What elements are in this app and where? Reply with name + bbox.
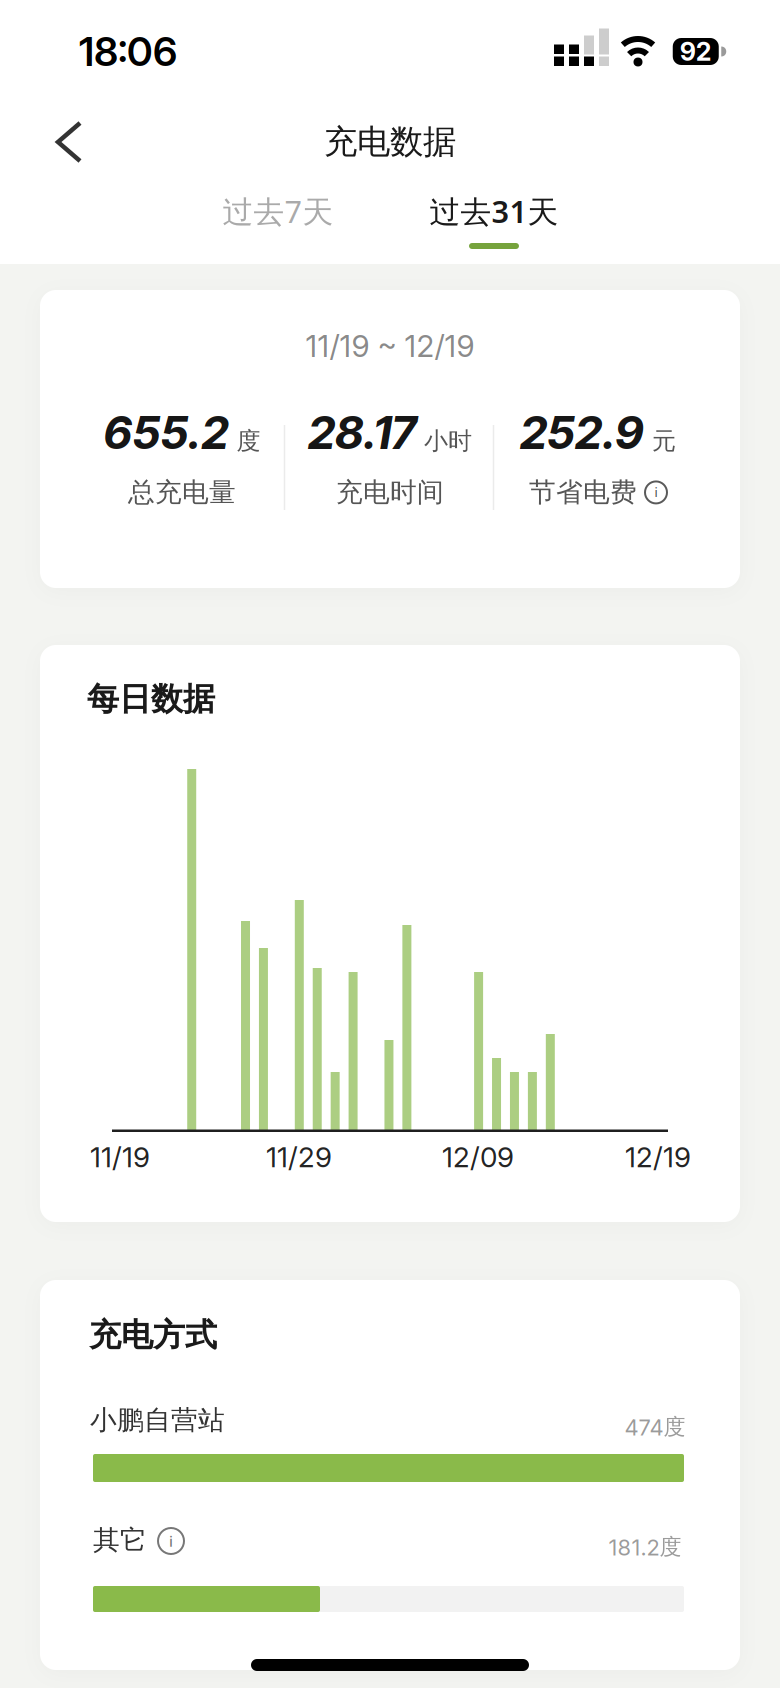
button[interactable]: 过去7天 (202, 179, 353, 243)
staticText: 181.2度 (608, 1533, 681, 1561)
staticText: 元 (652, 426, 676, 456)
staticText: 每日数据 (87, 679, 215, 719)
staticText: 655.2 (103, 405, 228, 460)
staticText: 度 (236, 426, 260, 456)
staticText: 充电数据 (324, 121, 456, 162)
staticText: 小鹏自营站 (90, 1404, 225, 1436)
staticText: 充电时间 (336, 476, 444, 509)
staticText: 过去7天 (222, 191, 333, 231)
staticText: 其它 (93, 1524, 147, 1556)
staticText: 12/19 (625, 1140, 691, 1174)
staticText: 12/09 (442, 1140, 514, 1174)
staticText: 11/19 (90, 1140, 150, 1174)
staticText: 11/19 ~ 12/19 (305, 328, 474, 364)
button[interactable]: i (645, 481, 667, 503)
staticText: i (654, 484, 657, 500)
staticText: 28.17 (308, 405, 416, 460)
staticText: 474度 (624, 1413, 685, 1441)
staticText: 节省电费 (529, 476, 637, 509)
staticText: 252.9 (520, 405, 644, 460)
staticText: 11/29 (266, 1140, 332, 1174)
staticText: 充电方式 (89, 1315, 217, 1355)
staticText: 92 (680, 36, 712, 67)
staticText: i (169, 1531, 173, 1551)
staticText: 小时 (424, 426, 472, 456)
staticText: 过去31天 (429, 191, 558, 231)
button[interactable]: 过去31天 (409, 179, 578, 243)
staticText: 总充电量 (128, 476, 236, 509)
staticText: 18:06 (79, 27, 177, 76)
button[interactable] (39, 112, 99, 172)
button[interactable]: i (158, 1528, 184, 1554)
